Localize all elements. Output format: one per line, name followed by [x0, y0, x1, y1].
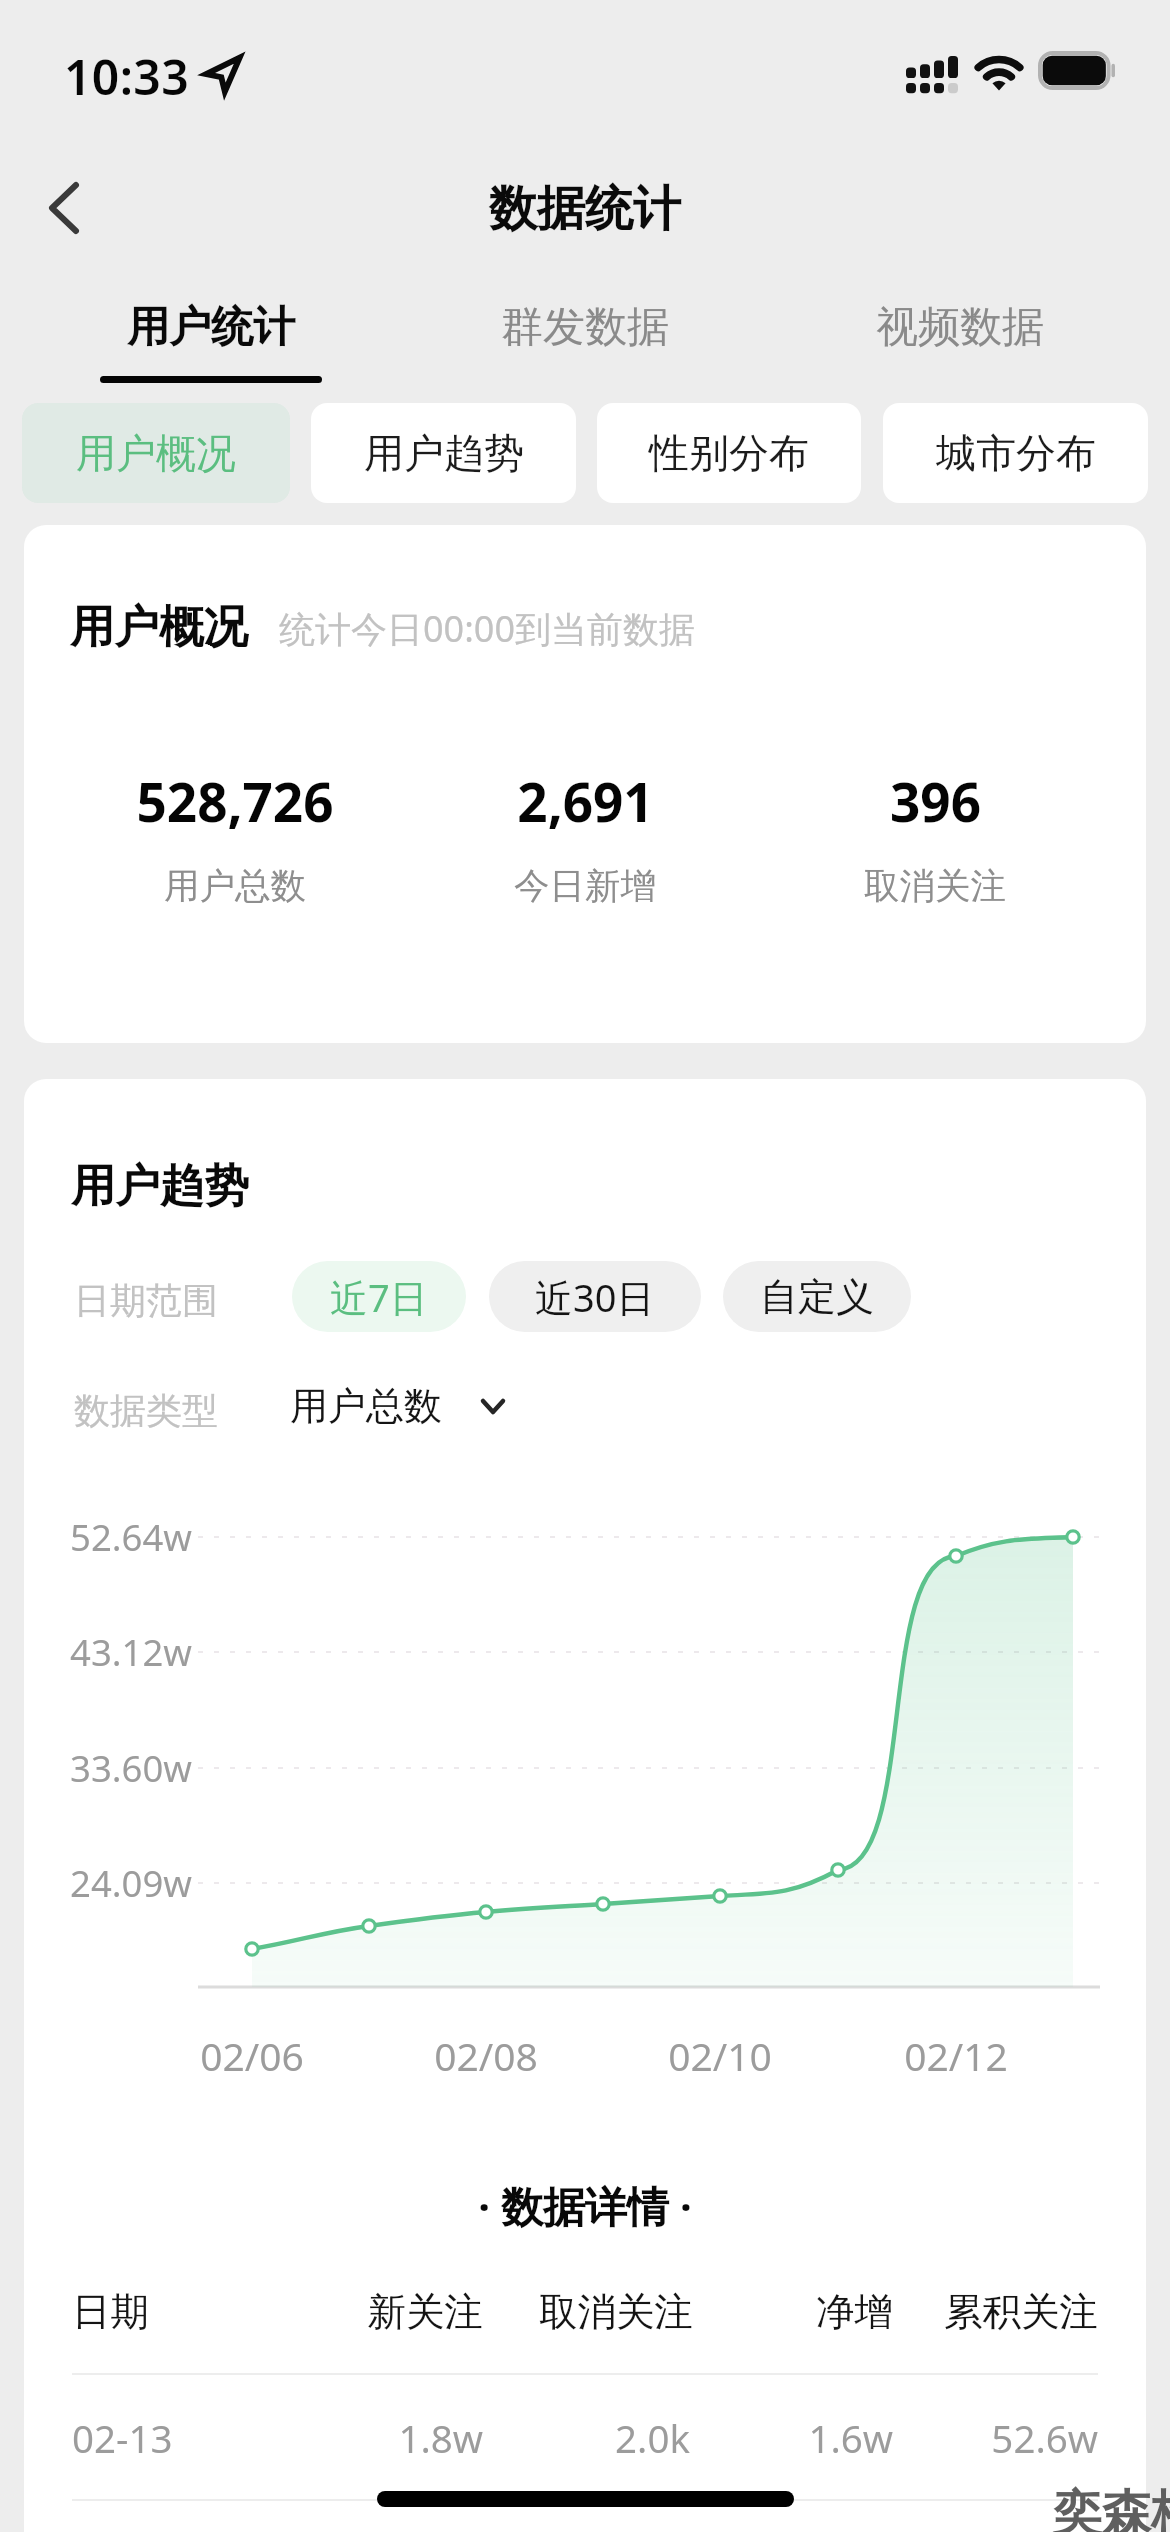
- staticText: 自定义: [760, 1273, 874, 1321]
- staticText: 数据统计: [489, 179, 681, 239]
- button[interactable]: 用户总数: [290, 1376, 505, 1436]
- staticText: 33.60w: [70, 1743, 192, 1793]
- staticText: 新关注: [367, 2288, 483, 2337]
- staticText: 用户概况: [76, 428, 236, 478]
- button[interactable]: 用户趋势: [311, 403, 576, 503]
- staticText: 396: [890, 765, 981, 837]
- staticText: 性别分布: [649, 428, 809, 478]
- staticText: 统计今日00:00到当前数据: [279, 604, 696, 653]
- button[interactable]: 近7日: [292, 1261, 466, 1332]
- staticText: 02/12: [904, 2029, 1008, 2082]
- staticText: 2.0k: [615, 2412, 690, 2464]
- staticText: 10:33: [64, 44, 190, 109]
- button[interactable]: 用户统计: [31, 278, 391, 396]
- staticText: 43.12w: [70, 1627, 192, 1677]
- staticText: 24.09w: [70, 1858, 192, 1908]
- staticText: · 数据详情 ·: [478, 2177, 692, 2234]
- staticText: 02-13: [72, 2412, 173, 2464]
- staticText: 取消关注: [864, 864, 1006, 909]
- staticText: 528,726: [136, 765, 334, 837]
- staticText: 奕森格: [1053, 2483, 1170, 2532]
- staticText: 用户趋势: [71, 1158, 249, 1214]
- staticText: 1.6w: [808, 2412, 893, 2464]
- button[interactable]: 群发数据: [405, 278, 765, 396]
- staticText: 1.8w: [398, 2412, 483, 2464]
- staticText: 用户概况: [70, 599, 248, 655]
- staticText: 数据类型: [74, 1388, 218, 1433]
- staticText: 群发数据: [501, 301, 669, 354]
- staticText: 52.64w: [70, 1512, 192, 1562]
- staticText: 02/06: [200, 2029, 304, 2082]
- staticText: 净增: [816, 2288, 893, 2337]
- staticText: 累积关注: [944, 2288, 1098, 2337]
- staticText: 用户总数: [164, 864, 306, 909]
- button[interactable]: 城市分布: [883, 403, 1148, 503]
- button[interactable]: Back: [16, 160, 112, 256]
- staticText: 取消关注: [539, 2288, 693, 2337]
- staticText: 52.6w: [991, 2412, 1098, 2464]
- staticText: 2,691: [517, 765, 654, 837]
- staticText: 城市分布: [936, 428, 1096, 478]
- button[interactable]: 近30日: [489, 1261, 701, 1332]
- staticText: 用户总数: [290, 1382, 442, 1430]
- staticText: 用户统计: [127, 301, 295, 354]
- button[interactable]: 视频数据: [780, 278, 1140, 396]
- button[interactable]: 自定义: [723, 1261, 911, 1332]
- staticText: 02/08: [434, 2029, 538, 2082]
- staticText: 02/10: [668, 2029, 772, 2082]
- staticText: 近7日: [330, 1271, 428, 1323]
- staticText: 近30日: [535, 1271, 655, 1323]
- button[interactable]: 性别分布: [597, 403, 861, 503]
- staticText: 日期范围: [74, 1278, 218, 1323]
- staticText: 用户趋势: [364, 428, 524, 478]
- button[interactable]: 用户概况: [22, 403, 290, 503]
- staticText: 日期: [72, 2288, 149, 2337]
- staticText: 今日新增: [514, 864, 656, 909]
- staticText: 视频数据: [876, 301, 1044, 354]
